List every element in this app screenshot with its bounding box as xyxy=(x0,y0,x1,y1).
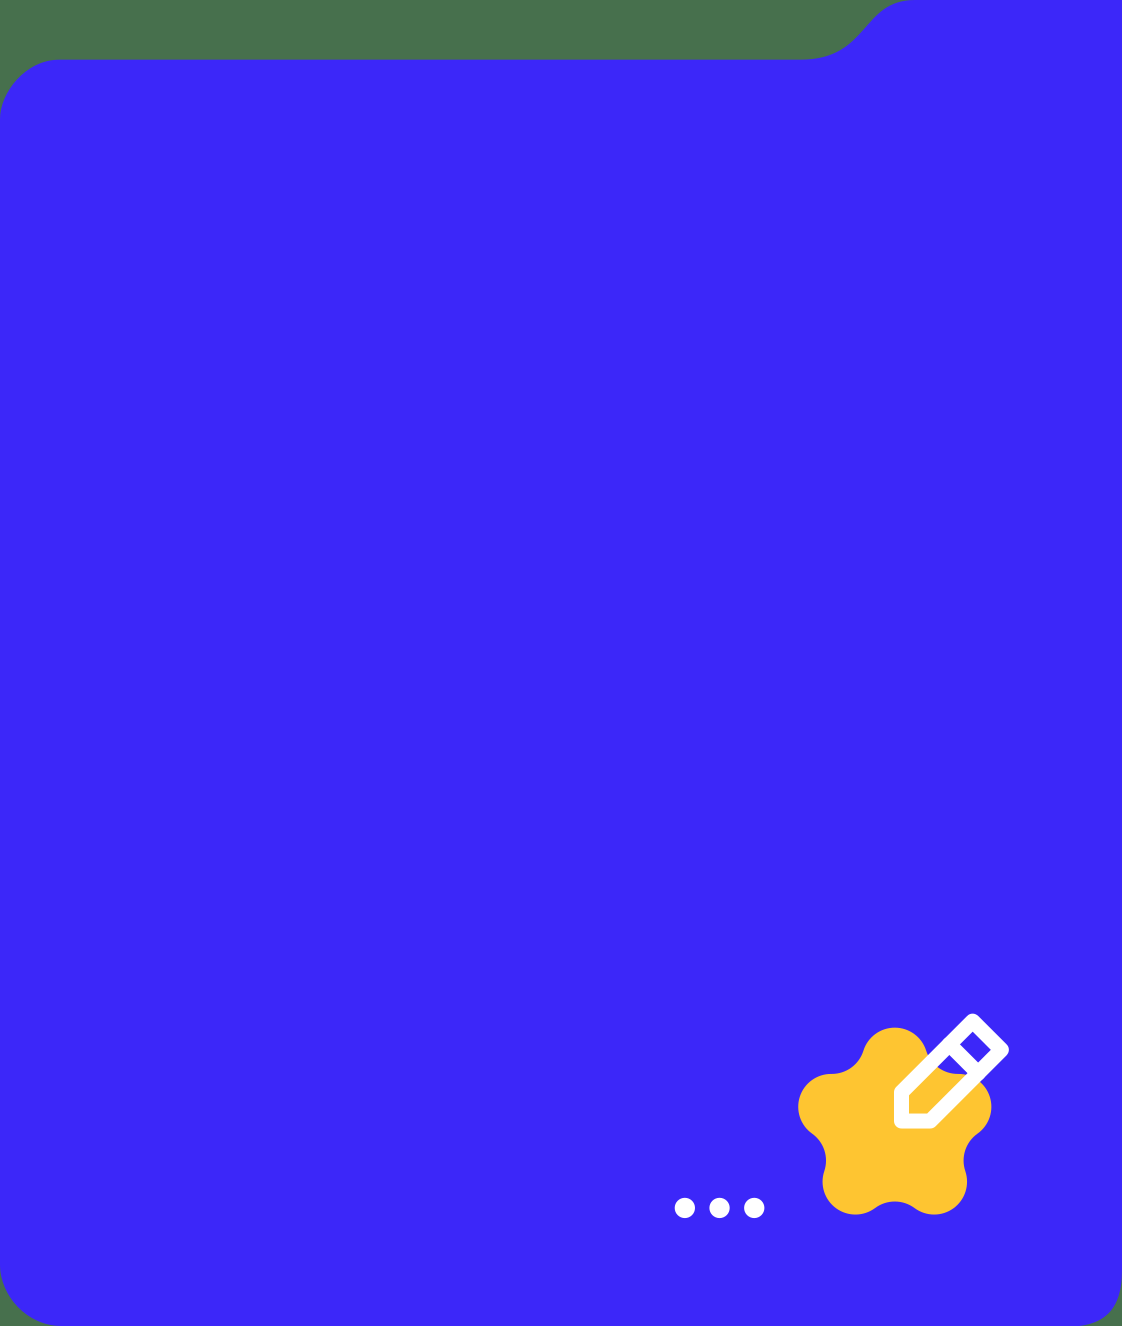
button[interactable]: Compose xyxy=(798,1016,1013,1221)
button[interactable]: More options xyxy=(674,1198,765,1218)
